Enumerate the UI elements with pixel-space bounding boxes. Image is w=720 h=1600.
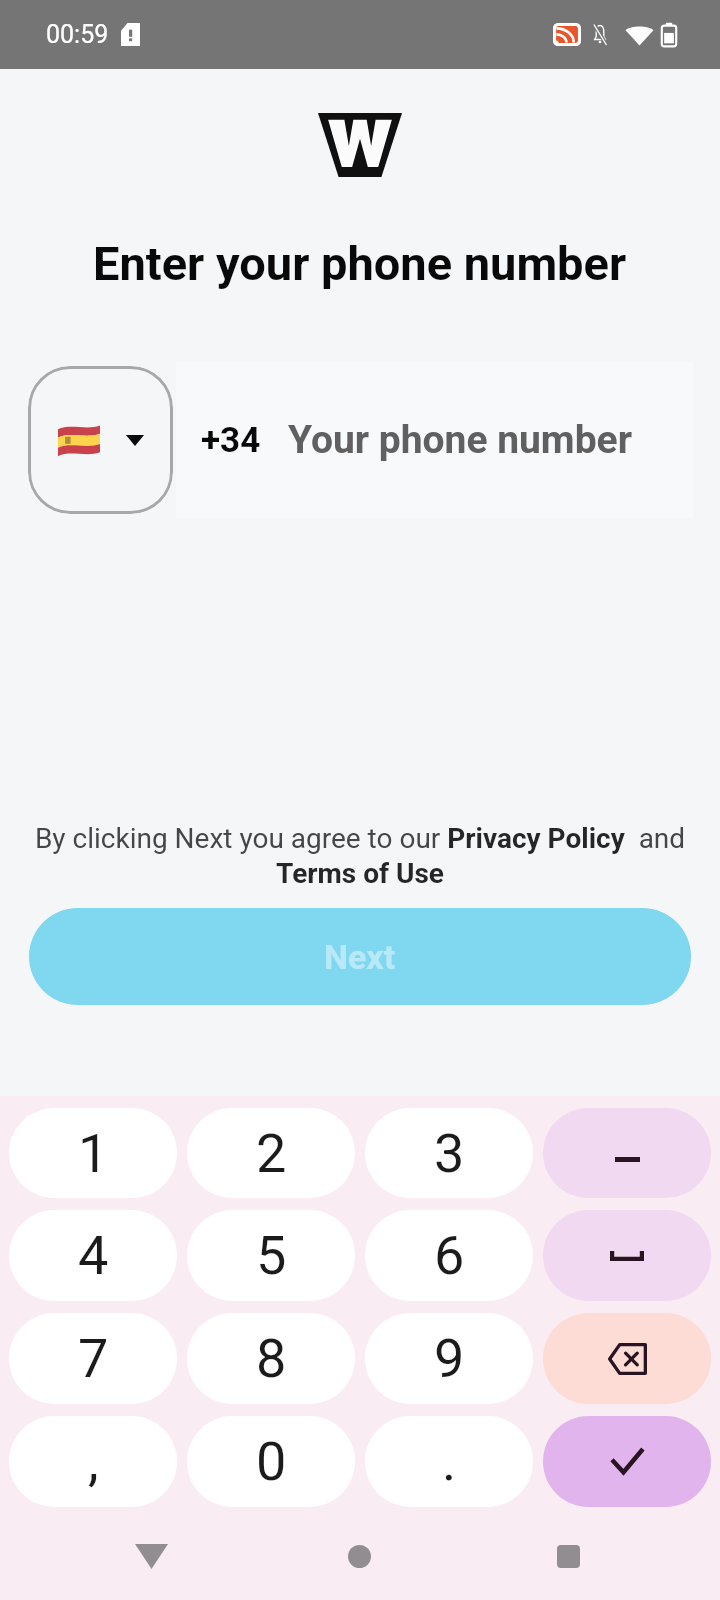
button[interactable]: Home: [255, 1513, 464, 1600]
staticText: 7: [78, 1327, 109, 1390]
button[interactable]: 8: [187, 1313, 355, 1404]
button[interactable]: Hide keyboard: [47, 1513, 255, 1600]
button[interactable]: 9: [365, 1313, 533, 1404]
button[interactable]: 0: [187, 1416, 355, 1507]
button[interactable]: 2: [187, 1108, 355, 1198]
button[interactable]: Backspace: [543, 1313, 711, 1404]
button[interactable]: 5: [187, 1210, 355, 1301]
button[interactable]: [28, 366, 173, 514]
button[interactable]: Done: [543, 1416, 711, 1507]
staticText: 5: [256, 1224, 287, 1287]
button[interactable]: Recent apps: [464, 1513, 673, 1600]
staticText: 3: [434, 1122, 465, 1185]
staticText: .: [442, 1430, 457, 1493]
staticText: 0: [256, 1430, 287, 1493]
button[interactable]: 3: [365, 1108, 533, 1198]
staticText: ,: [88, 1430, 99, 1493]
button[interactable]: 1: [9, 1108, 177, 1198]
staticText: 00:59: [46, 20, 109, 49]
staticText: 2: [256, 1122, 287, 1185]
staticText: 8: [256, 1327, 287, 1390]
staticText: Enter your phone number: [93, 236, 627, 291]
staticText: +34: [201, 420, 261, 461]
button[interactable]: Dash: [543, 1108, 711, 1198]
button[interactable]: +34: [176, 362, 693, 518]
staticText: Next: [324, 937, 396, 977]
staticText: By clicking Next you agree to our Privac…: [18, 822, 702, 890]
button[interactable]: Next: [29, 908, 691, 1005]
button[interactable]: 4: [9, 1210, 177, 1301]
button[interactable]: ,: [9, 1416, 177, 1507]
staticText: 4: [78, 1224, 109, 1287]
staticText: Your phone number: [288, 417, 632, 463]
button[interactable]: .: [365, 1416, 533, 1507]
staticText: 9: [434, 1327, 465, 1390]
button[interactable]: Space: [543, 1210, 711, 1301]
staticText: 6: [434, 1224, 465, 1287]
staticText: 1: [78, 1122, 109, 1185]
button[interactable]: 7: [9, 1313, 177, 1404]
button[interactable]: 6: [365, 1210, 533, 1301]
